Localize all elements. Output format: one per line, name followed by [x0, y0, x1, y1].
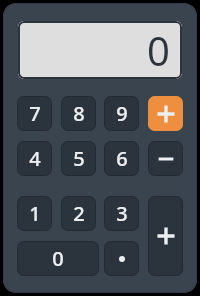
- staticText: 8: [73, 100, 85, 127]
- button[interactable]: Decimal point: [104, 241, 139, 276]
- button[interactable]: Zero: [17, 241, 99, 276]
- button[interactable]: Add: [148, 96, 183, 131]
- button[interactable]: Three: [104, 196, 139, 231]
- staticText: 9: [116, 100, 128, 127]
- staticText: 7: [29, 100, 41, 127]
- staticText: 0: [52, 245, 64, 272]
- staticText: 3: [116, 200, 128, 227]
- button[interactable]: Subtract: [148, 141, 183, 176]
- button[interactable]: Equals: [148, 196, 183, 276]
- button[interactable]: Seven: [17, 96, 52, 131]
- staticText: 6: [116, 145, 128, 172]
- staticText: 0: [147, 23, 170, 77]
- button[interactable]: Five: [61, 141, 96, 176]
- button[interactable]: 0: [18, 21, 182, 79]
- staticText: 5: [73, 145, 85, 172]
- button[interactable]: Six: [104, 141, 139, 176]
- staticText: 4: [29, 145, 41, 172]
- button[interactable]: Four: [17, 141, 52, 176]
- button[interactable]: Nine: [104, 96, 139, 131]
- button[interactable]: One: [17, 196, 52, 231]
- staticText: 2: [73, 200, 85, 227]
- staticText: 1: [29, 200, 41, 227]
- button[interactable]: Two: [61, 196, 96, 231]
- button[interactable]: Eight: [61, 96, 96, 131]
